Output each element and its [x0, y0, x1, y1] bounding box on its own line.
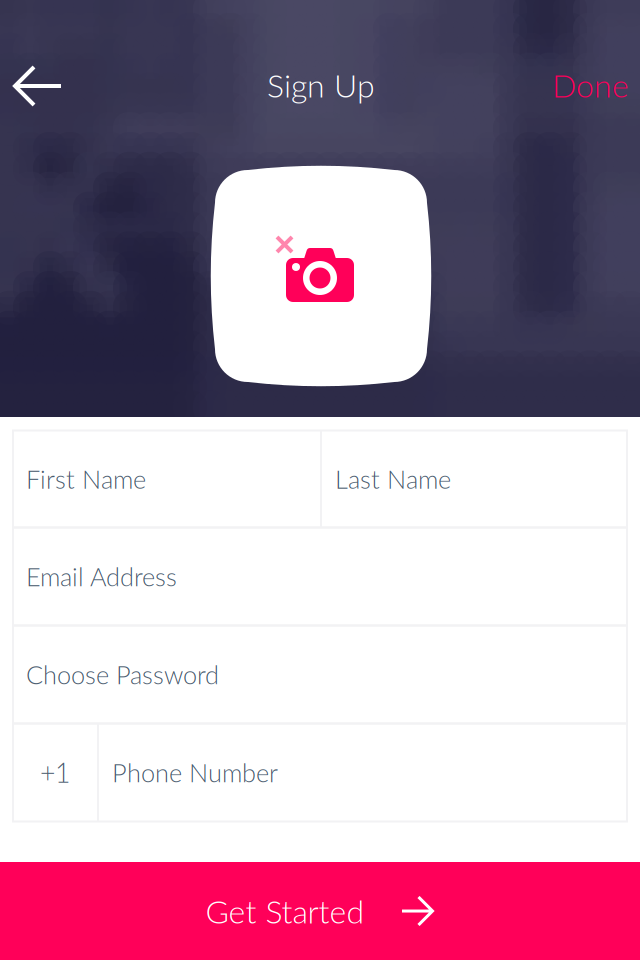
button[interactable]: Phone Number	[99, 723, 627, 821]
staticText: Phone Number	[112, 757, 278, 788]
staticText: First Name	[26, 464, 146, 494]
button[interactable]: Get Started	[0, 862, 640, 960]
button[interactable]: Back	[0, 47, 77, 125]
button[interactable]: Last Name	[322, 430, 627, 527]
staticText: Sign Up	[267, 66, 375, 104]
staticText: Get Started	[205, 892, 364, 930]
button[interactable]: Done	[519, 50, 629, 120]
staticText: Last Name	[335, 464, 451, 494]
staticText: +1	[40, 756, 70, 788]
staticText: Done	[552, 66, 629, 104]
staticText: Email Address	[26, 561, 177, 592]
button[interactable]: Email Address	[13, 527, 627, 625]
staticText: Choose Password	[26, 659, 219, 690]
button[interactable]: Choose Password	[13, 625, 627, 723]
button[interactable]: First Name	[13, 430, 320, 527]
